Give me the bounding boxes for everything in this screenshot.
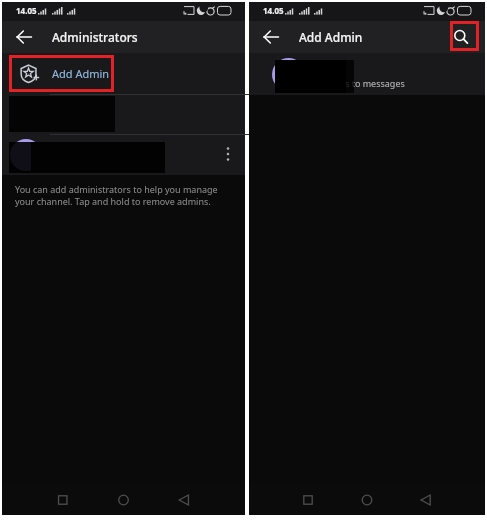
button[interactable]: d by Esti Pinarsih <box>2 135 245 175</box>
button[interactable]: s to messages <box>249 53 485 95</box>
staticText: Add Admin <box>52 66 110 81</box>
staticText: 14.05 <box>16 5 37 16</box>
button[interactable]: Search <box>448 24 474 50</box>
button[interactable]: Back <box>13 26 35 48</box>
staticText: Add Admin <box>299 29 363 45</box>
button[interactable]: More options <box>218 144 238 164</box>
staticText: s to messages <box>345 77 405 89</box>
staticText: Administrators <box>52 29 138 45</box>
staticText: You can add administrators to help you m… <box>15 183 225 208</box>
button[interactable]: Back <box>260 26 282 48</box>
button[interactable]: Add Admin <box>2 53 245 94</box>
staticText: 14.05 <box>263 5 284 16</box>
button[interactable]: Esti Pinarsih <box>2 95 245 134</box>
